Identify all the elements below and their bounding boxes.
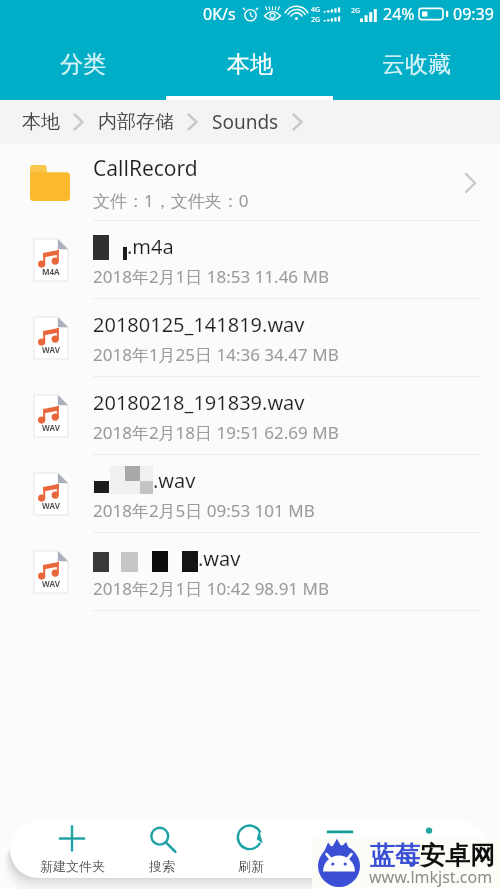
- staticText: 蓝莓: [370, 840, 420, 871]
- button[interactable]: Search: [117, 821, 206, 878]
- button[interactable]: Sort: [384, 821, 473, 878]
- staticText: 24%: [383, 3, 415, 25]
- staticText: 更多: [327, 858, 353, 874]
- button[interactable]: M4A: [0, 221, 500, 299]
- button[interactable]: 内部存储: [98, 110, 174, 134]
- staticText: 2G: [351, 6, 361, 16]
- button[interactable]: CallRecord: [0, 144, 500, 221]
- staticText: 排序: [416, 858, 442, 874]
- button[interactable]: 分类: [0, 28, 166, 100]
- staticText: 09:39: [453, 3, 494, 25]
- staticText: 2018年2月18日 19:51 62.69 MB: [93, 421, 339, 444]
- staticText: 20180125_141819.wav: [93, 311, 305, 338]
- staticText: WAV: [42, 422, 60, 433]
- staticText: 2018年1月25日 14:36 34.47 MB: [93, 343, 339, 366]
- button[interactable]: Refresh: [206, 821, 295, 878]
- staticText: CallRecord: [93, 154, 198, 183]
- staticText: 刷新: [238, 858, 264, 874]
- staticText: .wav: [198, 545, 241, 572]
- button[interactable]: 云收藏: [333, 28, 500, 100]
- button[interactable]: Sounds: [212, 109, 279, 135]
- staticText: www.lmkjst.com: [369, 866, 493, 888]
- staticText: 内部存储: [98, 110, 174, 134]
- button[interactable]: WAV: [0, 377, 500, 455]
- staticText: 本地: [22, 110, 60, 134]
- staticText: 2018年2月5日 09:53 101 MB: [93, 499, 315, 522]
- staticText: 2G: [311, 15, 321, 23]
- staticText: WAV: [42, 578, 60, 589]
- staticText: 4G: [311, 5, 321, 15]
- staticText: 搜索: [149, 858, 175, 874]
- staticText: 分类: [60, 50, 106, 79]
- staticText: 2018年2月1日 18:53 11.46 MB: [93, 265, 329, 288]
- staticText: 0K/s: [203, 3, 236, 25]
- staticText: 2018年2月1日 10:42 98.91 MB: [93, 577, 329, 600]
- staticText: 新建文件夹: [40, 858, 105, 874]
- staticText: 安卓网: [420, 840, 495, 871]
- staticText: M4A: [42, 266, 60, 277]
- staticText: 本地: [227, 50, 273, 79]
- staticText: 文件：1，文件夹：0: [93, 189, 249, 212]
- button[interactable]: New folder: [27, 821, 117, 878]
- staticText: 云收藏: [382, 50, 451, 79]
- button[interactable]: 本地: [22, 110, 60, 134]
- staticText: Sounds: [212, 109, 279, 135]
- button[interactable]: WAV: [0, 299, 500, 377]
- staticText: .m4a: [127, 233, 174, 260]
- button[interactable]: More: [295, 821, 384, 878]
- staticText: 20180218_191839.wav: [93, 389, 305, 416]
- button[interactable]: 本地: [166, 28, 333, 100]
- staticText: WAV: [42, 344, 60, 355]
- button[interactable]: WAV: [0, 455, 500, 533]
- staticText: WAV: [42, 500, 60, 511]
- button[interactable]: WAV: [0, 533, 500, 611]
- staticText: .wav: [153, 467, 196, 494]
